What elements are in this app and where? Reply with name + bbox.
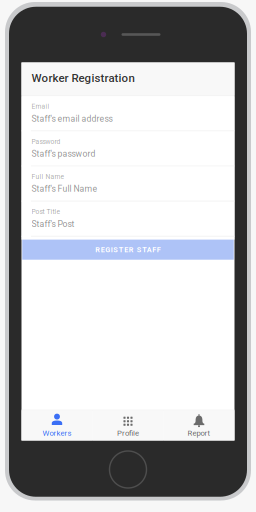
staticText: Staff's email address [31,114,112,124]
button[interactable]: Post Title [21,202,234,237]
staticText: Staff's password [31,149,95,159]
staticText: Staff's Full Name [31,184,97,194]
staticText: Password [31,138,60,145]
staticText: Email [31,103,49,110]
staticText: Workers [42,428,71,438]
staticText: Worker Registration [31,71,134,85]
staticText: Report [187,428,210,438]
staticText: Profile [117,428,139,438]
button[interactable]: Password [21,131,234,166]
staticText: Full Name [31,173,64,181]
button[interactable]: Report [163,410,234,440]
button[interactable]: Profile [92,410,163,440]
button[interactable]: Email [21,96,234,131]
staticText: Post Title [31,208,60,216]
button[interactable]: REGISTER STAFF [22,240,234,260]
staticText: Staff's Post [31,219,74,229]
button[interactable]: Workers [21,410,92,440]
button[interactable]: Full Name [21,166,234,202]
staticText: REGISTER STAFF [95,245,161,254]
